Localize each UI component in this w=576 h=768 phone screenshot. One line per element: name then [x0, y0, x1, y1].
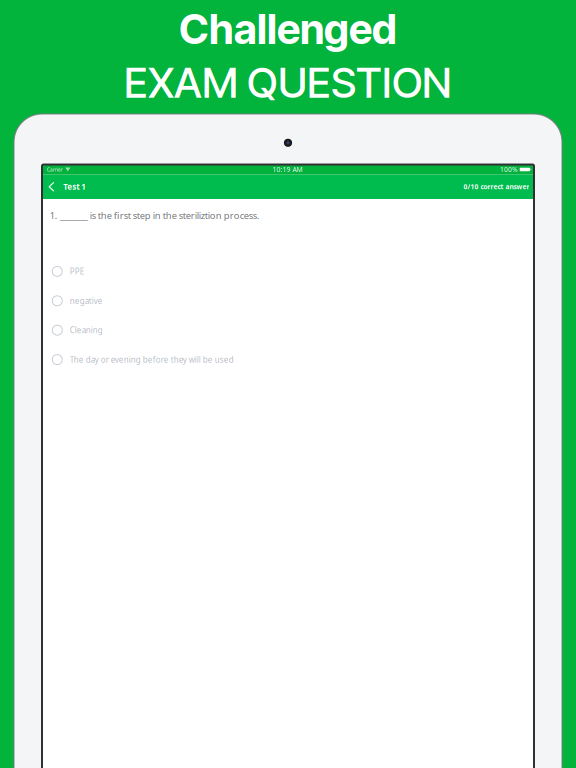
staticText: PPE — [70, 266, 84, 277]
staticText: negative — [70, 295, 103, 306]
staticText: Cleaning — [70, 325, 103, 335]
staticText: 0/10 correct answer — [463, 182, 529, 191]
button[interactable]: negative — [42, 286, 534, 315]
button[interactable]: 0/10 correct answer — [455, 175, 534, 199]
button[interactable]: Cleaning — [42, 315, 534, 345]
staticText: EXAM QUESTION — [124, 57, 452, 108]
staticText: 1. _______ is the first step in the ster… — [50, 209, 260, 222]
button[interactable]: PPE — [42, 257, 534, 286]
staticText: 100% — [500, 165, 518, 174]
button[interactable]: Back — [42, 175, 59, 199]
button[interactable]: The day or evening before they will be u… — [42, 345, 534, 374]
staticText: The day or evening before they will be u… — [70, 354, 234, 365]
staticText: 10:19 AM — [273, 165, 303, 174]
staticText: Challenged — [179, 4, 397, 54]
staticText: Carrier — [47, 166, 63, 173]
staticText: Test 1 — [63, 181, 86, 192]
